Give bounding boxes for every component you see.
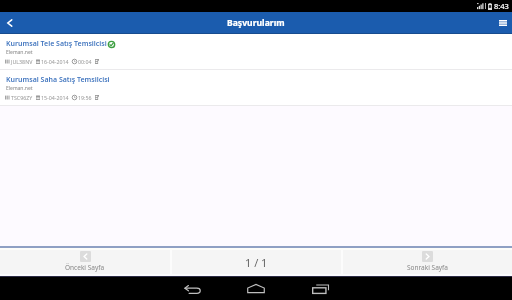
button[interactable]: Back (172, 277, 212, 300)
button[interactable]: Back (0, 12, 19, 33)
staticText: Kurumsal Saha Satış Temsilcisi (6, 75, 110, 85)
staticText: Eleman.net (6, 85, 33, 92)
staticText: 16-04-2014 (41, 58, 69, 65)
button[interactable]: Kurumsal Tele Satış Temsilcisi (0, 34, 512, 69)
button[interactable]: Önceki Sayfa (0, 250, 170, 274)
button[interactable]: Kurumsal Saha Satış Temsilcisi (0, 70, 512, 105)
staticText: Başvurularım (227, 17, 285, 29)
staticText: 15-04-2014 (41, 94, 69, 101)
button[interactable]: Sonraki Sayfa (343, 250, 512, 274)
staticText: 00:04 (78, 58, 92, 65)
button[interactable]: Menu (493, 12, 512, 33)
staticText: JUL38NV (11, 58, 33, 65)
staticText: Eleman.net (6, 49, 33, 56)
staticText: 19:56 (78, 94, 92, 101)
button[interactable]: Recent apps (300, 277, 340, 300)
staticText: Kurumsal Tele Satış Temsilcisi (6, 39, 107, 49)
staticText: Önceki Sayfa (65, 263, 105, 272)
staticText: 1 / 1 (245, 255, 268, 270)
button[interactable]: Home (236, 277, 276, 300)
staticText: TSC96ZY (11, 94, 33, 101)
staticText: Sonraki Sayfa (407, 263, 448, 272)
button[interactable]: 1 / 1 (172, 250, 341, 274)
staticText: 8:43 (494, 1, 509, 11)
